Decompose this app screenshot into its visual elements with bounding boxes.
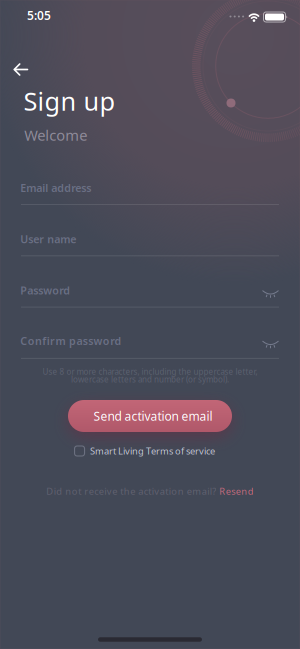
button[interactable]: Send activation email [68, 400, 232, 432]
staticText: Sign up [23, 84, 115, 118]
staticText: Use 8 or more characters, including the … [42, 366, 257, 377]
staticText: 5:05 [27, 7, 51, 23]
staticText: Resend [219, 485, 254, 497]
staticText: User name [20, 232, 76, 246]
button[interactable]: Back [7, 55, 35, 83]
button[interactable]: Show password [257, 282, 283, 304]
staticText: Email address [20, 181, 91, 195]
staticText: Did not receive the activation email? [46, 485, 216, 497]
button[interactable]: Confirm password [20, 334, 279, 359]
staticText: lowercase letters and number (or symbol)… [71, 374, 229, 385]
button[interactable]: Resend [219, 485, 254, 497]
button[interactable]: Show password [257, 333, 283, 355]
button[interactable]: User name [20, 232, 279, 256]
staticText: Send activation email [93, 408, 212, 424]
button[interactable]: Smart Living Terms of service [75, 445, 215, 457]
staticText: Password [20, 283, 70, 298]
staticText: Welcome [24, 125, 87, 145]
staticText: Smart Living Terms of service [90, 445, 215, 457]
button[interactable]: Password [20, 283, 279, 308]
button[interactable]: Email address [20, 181, 279, 205]
staticText: Confirm password [20, 334, 121, 348]
